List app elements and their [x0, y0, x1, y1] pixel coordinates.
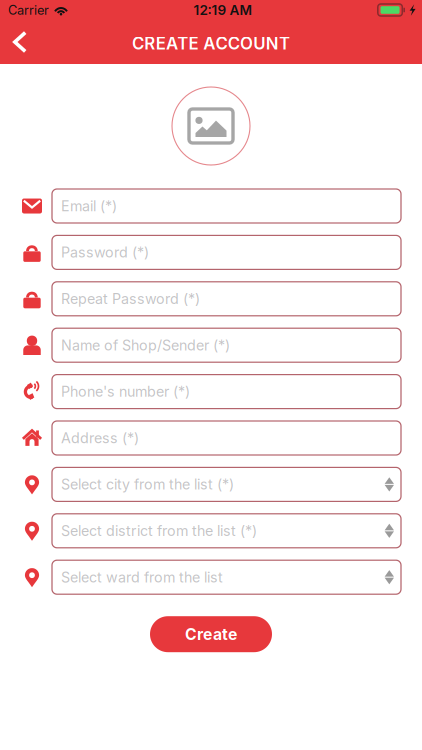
button[interactable]: Password (*)	[0, 235, 422, 269]
button[interactable]: Select district from the list (*)	[0, 514, 422, 548]
staticText: Select ward from the list	[61, 569, 223, 586]
staticText: Password (*)	[61, 244, 149, 261]
button[interactable]: Create	[150, 616, 272, 652]
button[interactable]: Back	[0, 20, 40, 64]
button[interactable]: Phone's number (*)	[0, 375, 422, 409]
staticText: Name of Shop/Sender (*)	[61, 337, 230, 354]
staticText: Email (*)	[61, 197, 117, 215]
staticText: 12:19 AM	[193, 2, 252, 18]
staticText: Carrier	[8, 2, 49, 18]
staticText: CREATE ACCOUNT	[132, 33, 290, 54]
staticText: Select city from the list (*)	[61, 476, 234, 493]
button[interactable]: Add photo	[172, 87, 250, 165]
button[interactable]: Select city from the list (*)	[0, 467, 422, 501]
staticText: Select district from the list (*)	[61, 522, 257, 539]
button[interactable]: Repeat Password (*)	[0, 282, 422, 316]
button[interactable]: Email (*)	[0, 189, 422, 223]
button[interactable]: Select ward from the list	[0, 560, 422, 594]
staticText: Repeat Password (*)	[61, 290, 200, 307]
button[interactable]: Address (*)	[0, 421, 422, 455]
button[interactable]: Name of Shop/Sender (*)	[0, 328, 422, 362]
staticText: Address (*)	[61, 429, 139, 447]
staticText: Create	[185, 625, 237, 644]
staticText: Phone's number (*)	[61, 383, 190, 400]
